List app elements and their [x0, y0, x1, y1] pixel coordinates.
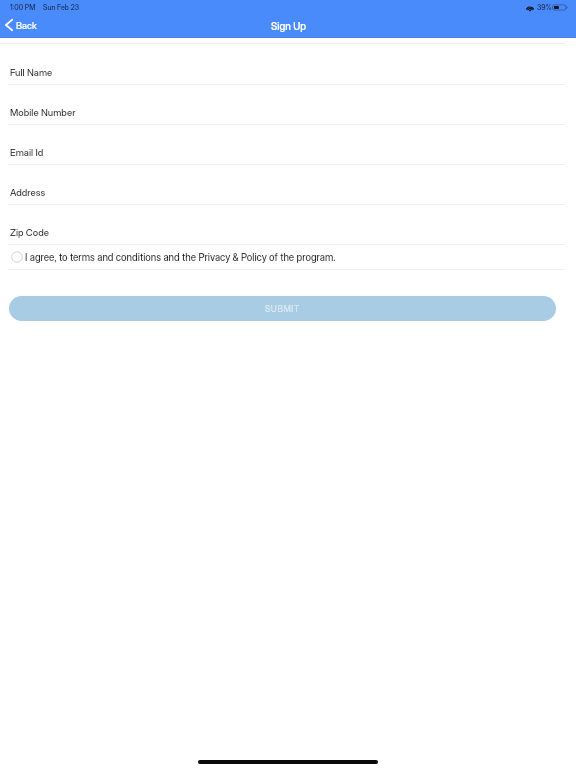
button[interactable]: I agree to terms and conditions [11, 252, 336, 264]
button[interactable]: Address [0, 165, 576, 205]
staticText: Back [16, 20, 37, 31]
staticText: Sign Up [271, 20, 306, 32]
staticText: Full Name [10, 67, 53, 79]
button[interactable]: Email Id [0, 125, 576, 165]
button[interactable]: Mobile Number [0, 85, 576, 125]
button[interactable]: Back [0, 15, 43, 35]
button[interactable]: SUBMIT [9, 296, 556, 321]
staticText: 1:00 PM [10, 3, 36, 12]
staticText: Sun Feb 23 [43, 3, 80, 12]
staticText: I agree, to terms and conditions and the… [25, 252, 336, 264]
staticText: Zip Code [10, 227, 49, 239]
staticText: Address [10, 187, 46, 199]
button[interactable]: Full Name [0, 45, 576, 85]
staticText: 39% [537, 3, 552, 12]
button[interactable]: Zip Code [0, 205, 576, 245]
staticText: SUBMIT [265, 304, 300, 314]
staticText: Mobile Number [10, 107, 76, 119]
staticText: Email Id [10, 147, 44, 159]
